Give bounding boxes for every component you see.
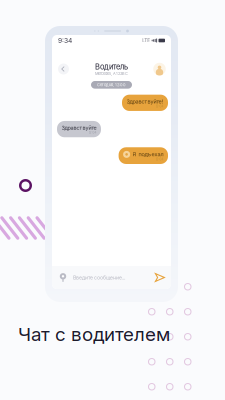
staticText: Чат с водителем: [18, 323, 170, 346]
staticText: 12:04: [155, 104, 163, 108]
button[interactable]: Attach location: [58, 272, 68, 283]
staticText: Введите сообщение...: [73, 274, 125, 281]
staticText: Mercedes, A123BC: [95, 71, 128, 76]
staticText: Я подъехал: [132, 151, 163, 158]
staticText: Здравствуйте!: [126, 98, 163, 105]
staticText: LTE: [142, 38, 150, 43]
staticText: Водитель: [95, 62, 128, 71]
staticText: 9:34: [58, 36, 72, 45]
button[interactable]: Send: [155, 273, 165, 282]
staticText: Здравствуйте: [61, 125, 96, 131]
button[interactable]: Driver profile: [153, 62, 166, 75]
staticText: Сегодня, 12:00: [97, 82, 126, 87]
staticText: 12:04: [88, 131, 96, 134]
button[interactable]: Back: [57, 62, 70, 75]
staticText: 12:04: [155, 157, 163, 161]
